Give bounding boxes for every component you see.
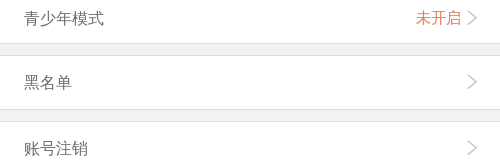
button[interactable]: 账号注销 (0, 122, 500, 168)
staticText: 账号注销 (24, 139, 88, 159)
staticText: 未开启 (416, 9, 461, 28)
staticText: 青少年模式 (24, 9, 104, 29)
button[interactable]: 黑名单 (0, 56, 500, 109)
button[interactable]: 青少年模式 (0, 0, 500, 45)
staticText: 黑名单 (24, 73, 72, 93)
